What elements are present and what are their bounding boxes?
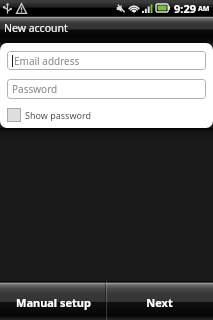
staticText: Manual setup [16, 295, 91, 310]
staticText: 9:29 [174, 1, 196, 16]
staticText: Show password [25, 109, 91, 121]
staticText: AM [198, 4, 210, 14]
button[interactable]: Password [7, 79, 206, 99]
button[interactable]: Manual setup [0, 281, 106, 320]
staticText: Password [12, 82, 58, 96]
staticText: New account [4, 21, 68, 35]
staticText: Next [146, 295, 173, 310]
button[interactable]: Email address [7, 51, 206, 70]
button[interactable]: Show password [7, 108, 91, 122]
staticText: Email address [14, 54, 80, 68]
button[interactable]: Next [106, 281, 213, 320]
